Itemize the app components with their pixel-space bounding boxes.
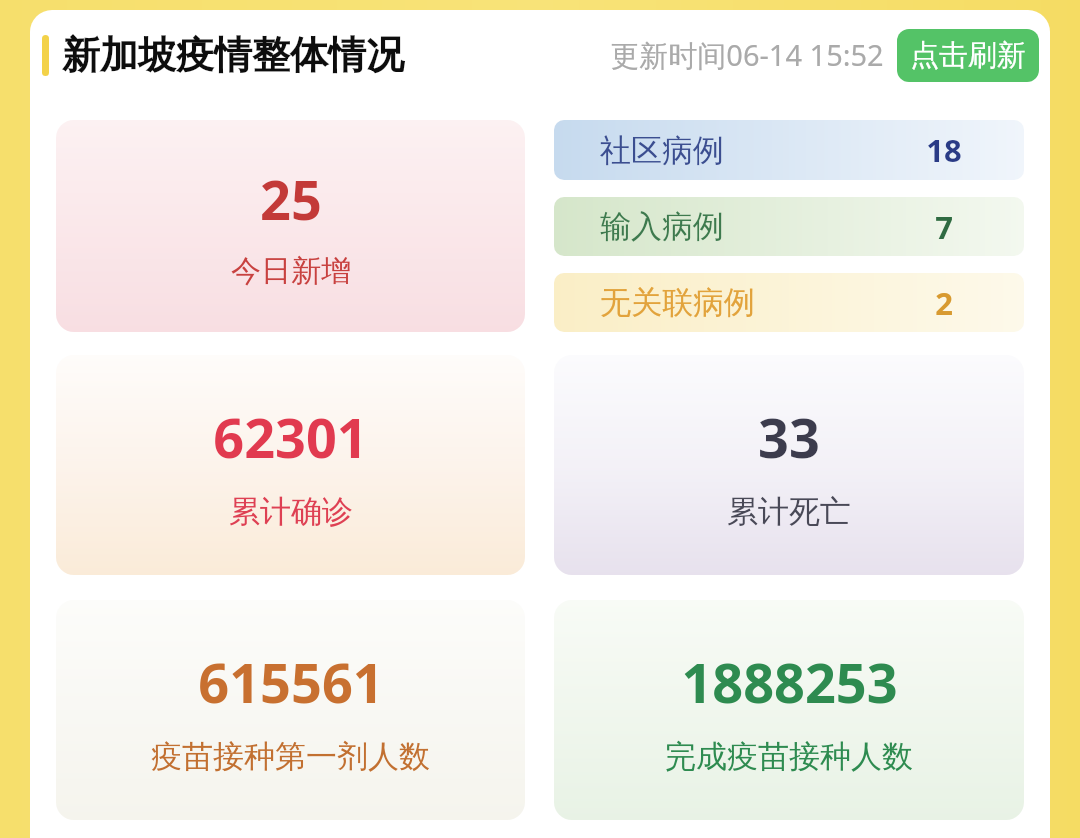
button[interactable]: 点击刷新 (897, 29, 1039, 82)
staticText: 无关联病例 (600, 283, 755, 322)
staticText: 1888253 (681, 645, 898, 719)
staticText: 输入病例 (600, 207, 724, 246)
staticText: 社区病例 (600, 131, 724, 170)
button[interactable]: 社区病例 (554, 120, 1024, 180)
staticText: 7 (935, 206, 953, 248)
staticText: 62301 (213, 400, 368, 474)
staticText: 615561 (198, 645, 384, 719)
staticText: 25 (260, 162, 322, 236)
staticText: 完成疫苗接种人数 (665, 737, 913, 776)
button[interactable]: 62301 (56, 355, 525, 575)
staticText: 33 (758, 400, 820, 474)
staticText: 疫苗接种第一剂人数 (151, 737, 430, 776)
button[interactable]: 615561 (56, 600, 525, 820)
staticText: 累计死亡 (727, 492, 851, 531)
staticText: 新加坡疫情整体情况 (62, 31, 404, 79)
staticText: 点击刷新 (910, 37, 1026, 74)
staticText: 18 (926, 129, 962, 171)
staticText: 更新时间06-14 15:52 (610, 35, 884, 75)
button[interactable]: 25 (56, 120, 525, 332)
staticText: 今日新增 (231, 252, 351, 290)
button[interactable]: 输入病例 (554, 197, 1024, 256)
staticText: 累计确诊 (229, 492, 353, 531)
button[interactable]: 33 (554, 355, 1024, 575)
button[interactable]: 无关联病例 (554, 273, 1024, 332)
button[interactable]: 1888253 (554, 600, 1024, 820)
staticText: 2 (935, 282, 953, 324)
